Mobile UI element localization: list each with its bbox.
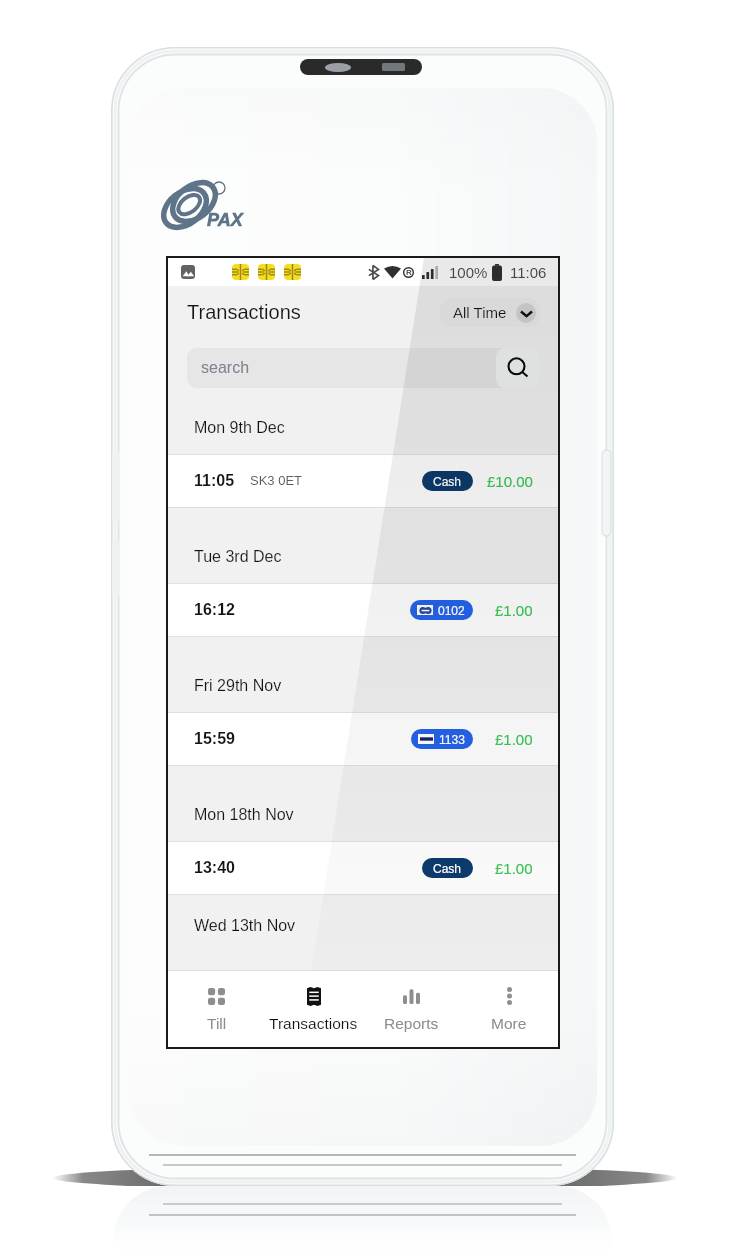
button[interactable]: 15:59 [168, 713, 558, 765]
staticText: Mon 9th Dec [194, 419, 285, 437]
staticText: 13:40 [194, 859, 235, 877]
staticText: Cash [433, 475, 462, 488]
button[interactable]: 11:05 [168, 455, 558, 507]
staticText: search [201, 359, 496, 377]
button[interactable]: All Time [439, 298, 541, 327]
staticText: 11:05 [194, 472, 235, 490]
staticText: R [406, 268, 412, 277]
staticText: £1.00 [495, 860, 533, 877]
button[interactable]: 16:12 [168, 584, 558, 636]
staticText: Mon 18th Nov [194, 806, 294, 824]
button[interactable]: search [187, 348, 540, 388]
staticText: 15:59 [194, 730, 235, 748]
staticText: £1.00 [495, 731, 533, 748]
button[interactable]: 13:40 [168, 842, 558, 894]
staticText: 100% [449, 264, 488, 281]
staticText: 11:06 [510, 264, 547, 281]
button[interactable]: More [460, 971, 558, 1047]
staticText: 1133 [439, 733, 465, 746]
staticText: PAX [207, 210, 243, 230]
staticText: 16:12 [194, 601, 235, 619]
staticText: Transactions [187, 301, 301, 323]
staticText: 0102 [438, 604, 465, 617]
button[interactable]: Till [168, 971, 265, 1047]
staticText: Till [207, 1015, 227, 1032]
staticText: Fri 29th Nov [194, 677, 282, 695]
staticText: Tue 3rd Dec [194, 548, 282, 566]
button[interactable]: Search [496, 348, 540, 388]
staticText: £10.00 [487, 473, 533, 490]
button[interactable]: Reports [362, 971, 460, 1047]
staticText: More [491, 1015, 527, 1032]
staticText: Transactions [269, 1015, 358, 1032]
staticText: All Time [453, 304, 507, 321]
staticText: SK3 0ET [250, 473, 303, 488]
staticText: Cash [433, 862, 462, 875]
staticText: £1.00 [495, 602, 533, 619]
staticText: Wed 13th Nov [194, 917, 296, 935]
button[interactable]: Transactions [265, 971, 362, 1047]
staticText: Reports [384, 1015, 439, 1032]
